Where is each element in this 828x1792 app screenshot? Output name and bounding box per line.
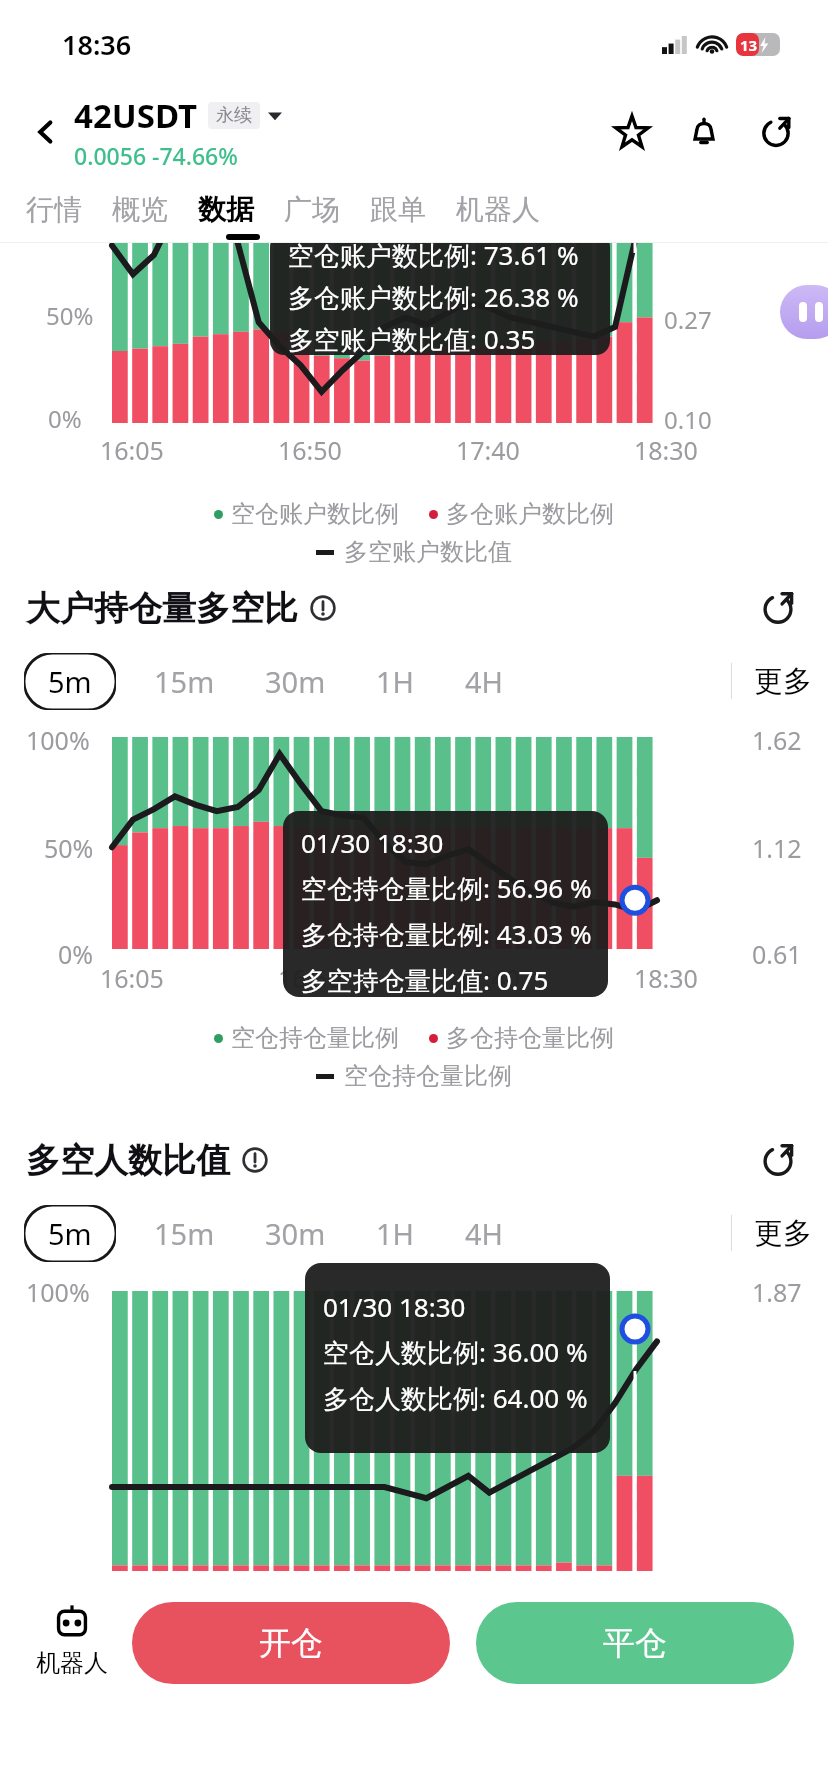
staticText: 1H xyxy=(376,662,415,701)
staticText: 多空账户数比值 xyxy=(344,537,512,567)
button[interactable]: Floating window xyxy=(780,285,828,339)
button[interactable]: 行情 xyxy=(26,192,82,227)
staticText: 50% xyxy=(46,299,94,332)
button[interactable]: 15m xyxy=(142,1205,227,1262)
button[interactable]: Expand chart xyxy=(756,1138,800,1182)
staticText: 多空人数比值 xyxy=(26,1139,230,1182)
staticText: 空仓持仓量比例 xyxy=(231,1023,399,1053)
staticText: 平仓 xyxy=(603,1623,667,1663)
button[interactable]: Info xyxy=(308,593,338,623)
staticText: 1.87 xyxy=(752,1275,802,1309)
staticText: 16:05 xyxy=(100,961,164,995)
button[interactable]: 广场 xyxy=(284,192,340,227)
staticText: 1H xyxy=(376,1214,415,1253)
staticText: 更多 xyxy=(754,1215,812,1252)
staticText: 15m xyxy=(154,1214,215,1253)
staticText: 大户持仓量多空比 xyxy=(26,587,298,630)
staticText: 5m xyxy=(48,662,92,701)
staticText: 多仓持仓量比例: 43.03 % xyxy=(301,916,592,952)
button[interactable]: Favorite xyxy=(608,108,656,156)
staticText: 4H xyxy=(465,1214,504,1253)
staticText: 数据 xyxy=(198,192,254,227)
staticText: 50% xyxy=(44,831,94,865)
staticText: 1.62 xyxy=(752,723,802,757)
staticText: 多仓账户数比例: 26.38 % xyxy=(288,279,579,315)
button[interactable]: 更多 xyxy=(732,1206,812,1261)
staticText: 机器人 xyxy=(456,192,540,227)
staticText: 0% xyxy=(58,937,94,971)
button[interactable]: 30m xyxy=(253,1205,338,1262)
staticText: 0% xyxy=(48,402,82,435)
button[interactable]: Alerts xyxy=(680,108,728,156)
button[interactable]: 机器人 xyxy=(24,1602,120,1678)
staticText: 广场 xyxy=(284,192,340,227)
staticText: 18:36 xyxy=(62,26,132,63)
staticText: 机器人 xyxy=(36,1648,108,1678)
staticText: 18:30 xyxy=(634,961,698,995)
staticText: 1.12 xyxy=(752,831,802,865)
button[interactable]: 15m xyxy=(142,653,227,710)
staticText: 17:40 xyxy=(456,961,520,995)
button[interactable]: Back xyxy=(22,108,70,156)
button[interactable]: 5m xyxy=(24,1205,116,1262)
staticText: 更多 xyxy=(754,663,812,700)
staticText: 开仓 xyxy=(259,1623,323,1663)
staticText: 多仓账户数比例 xyxy=(446,499,614,529)
staticText: 42USDT xyxy=(74,93,198,138)
staticText: 概览 xyxy=(112,192,168,227)
staticText: 空仓持仓量比例 xyxy=(344,1061,512,1091)
staticText: 100% xyxy=(26,723,90,757)
staticText: 行情 xyxy=(26,192,82,227)
staticText: 16:05 xyxy=(100,433,164,467)
staticText: 0.27 xyxy=(664,303,712,336)
button[interactable]: 开仓 xyxy=(132,1602,450,1684)
staticText: 多空账户数比值: 0.35 xyxy=(288,321,536,355)
button[interactable]: 数据 xyxy=(198,192,254,227)
button[interactable]: 平仓 xyxy=(476,1602,794,1684)
staticText: 空仓账户数比例: 73.61 % xyxy=(288,243,579,273)
button[interactable]: 概览 xyxy=(112,192,168,227)
button[interactable]: 4H xyxy=(453,653,516,710)
button[interactable]: 5m xyxy=(24,653,116,710)
staticText: 4H xyxy=(465,662,504,701)
button[interactable]: 1H xyxy=(364,1205,427,1262)
staticText: 16:50 xyxy=(278,433,342,467)
staticText: 17:40 xyxy=(456,433,520,467)
staticText: 0.61 xyxy=(752,937,802,971)
button[interactable]: 机器人 xyxy=(456,192,540,227)
staticText: 多空持仓量比值: 0.75 xyxy=(301,962,549,997)
staticText: 跟单 xyxy=(370,192,426,227)
staticText: 01/30 18:30 xyxy=(301,825,444,860)
staticText: 永续 xyxy=(216,104,252,127)
button[interactable]: 更多 xyxy=(732,654,812,709)
staticText: 13 xyxy=(740,35,758,55)
button[interactable]: Expand chart xyxy=(756,586,800,630)
button[interactable]: Info xyxy=(240,1145,270,1175)
staticText: 0.0056 -74.66% xyxy=(74,140,238,171)
button[interactable]: 30m xyxy=(253,653,338,710)
button[interactable]: 跟单 xyxy=(370,192,426,227)
staticText: 空仓账户数比例 xyxy=(231,499,399,529)
staticText: 多仓人数比例: 64.00 % xyxy=(323,1380,588,1416)
staticText: 01/30 18:30 xyxy=(323,1289,466,1324)
staticText: 15m xyxy=(154,662,215,701)
staticText: 30m xyxy=(265,662,326,701)
button[interactable]: 4H xyxy=(453,1205,516,1262)
button[interactable]: Share xyxy=(752,108,800,156)
staticText: 100% xyxy=(26,1275,90,1309)
staticText: 空仓持仓量比例: 56.96 % xyxy=(301,870,592,906)
staticText: 30m xyxy=(265,1214,326,1253)
staticText: 16:50 xyxy=(278,961,342,995)
staticText: 18:30 xyxy=(634,433,698,467)
staticText: 空仓人数比例: 36.00 % xyxy=(323,1334,588,1370)
staticText: 0.10 xyxy=(664,403,712,436)
staticText: 多仓持仓量比例 xyxy=(446,1023,614,1053)
staticText: 5m xyxy=(48,1214,92,1253)
button[interactable]: 1H xyxy=(364,653,427,710)
